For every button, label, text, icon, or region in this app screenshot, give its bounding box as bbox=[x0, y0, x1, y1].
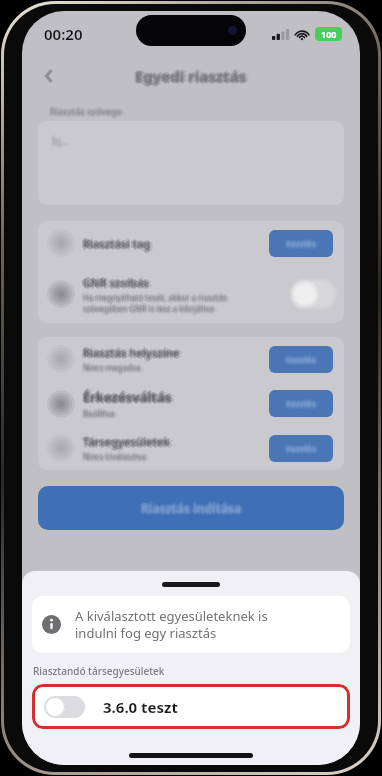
staticText: Érkezésváltás bbox=[84, 389, 173, 407]
button[interactable]: Társegyesületek bbox=[38, 426, 344, 470]
staticText: Riasztási tag bbox=[83, 234, 151, 249]
staticText: Kezelés bbox=[285, 355, 315, 366]
staticText: Kezelés bbox=[286, 236, 316, 247]
staticText: Társegyesületek bbox=[86, 434, 174, 449]
staticText: Kezelés bbox=[287, 397, 317, 408]
staticText: Riasztás helyszíne bbox=[81, 345, 178, 360]
staticText: Nincs kiválasztva bbox=[83, 449, 147, 460]
staticText: Írj… bbox=[55, 135, 72, 147]
staticText: Ha megnyitható tesét, akkor a riasztás s… bbox=[84, 291, 228, 313]
staticText: Társegyesületek bbox=[81, 434, 169, 449]
button[interactable]: Riasztási tag bbox=[38, 221, 344, 265]
staticText: Nincs megadva bbox=[83, 364, 141, 375]
staticText: Riasztási tag bbox=[83, 238, 151, 253]
staticText: Nincs megadva bbox=[83, 362, 141, 373]
staticText: Riasztás indítása bbox=[141, 500, 242, 516]
staticText: Kezelés bbox=[286, 400, 316, 411]
staticText: 00:20 bbox=[44, 24, 83, 44]
button[interactable]: Back bbox=[38, 65, 60, 87]
staticText: Riasztás indítása bbox=[140, 501, 241, 517]
button[interactable]: Kezelés bbox=[269, 230, 333, 257]
staticText: Ha megnyitható tesét, akkor a riasztás s… bbox=[86, 292, 230, 314]
staticText: Kezelés bbox=[286, 441, 316, 452]
staticText: Egyedi riasztás bbox=[135, 64, 247, 84]
staticText: Ha megnyitható tesét, akkor a riasztás s… bbox=[82, 293, 226, 315]
staticText: GNR szolbás bbox=[86, 275, 153, 290]
button[interactable]: Riasztás helyszíne bbox=[38, 337, 344, 381]
staticText: Kezelés bbox=[289, 443, 319, 454]
staticText: Egyedi riasztás bbox=[134, 65, 246, 85]
staticText: Kezelés bbox=[285, 397, 315, 408]
staticText: Kezelés bbox=[287, 399, 317, 410]
staticText: Kezelés bbox=[285, 399, 315, 410]
staticText: Kezelés bbox=[287, 239, 317, 250]
staticText: Riasztás indítása bbox=[142, 499, 243, 515]
staticText: Egyedi riasztás bbox=[136, 65, 248, 85]
staticText: Társegyesületek bbox=[82, 435, 170, 450]
staticText: Nincs kiválasztva bbox=[83, 453, 147, 464]
staticText: Érkezésváltás bbox=[83, 390, 172, 408]
staticText: Nincs kiválasztva bbox=[86, 451, 150, 462]
staticText: Riasztási tag bbox=[83, 236, 151, 251]
staticText: Riasztás szövege bbox=[49, 106, 121, 118]
staticText: Kezelés bbox=[287, 237, 317, 248]
staticText: Egyedi riasztás bbox=[133, 66, 245, 86]
staticText: Riasztás szövege bbox=[48, 105, 120, 117]
staticText: Társegyesületek bbox=[82, 433, 170, 448]
staticText: Riasztás helyszíne bbox=[82, 344, 179, 359]
staticText: GNR szolbás bbox=[83, 275, 150, 290]
button[interactable]: GNR szolbás bbox=[38, 265, 344, 323]
staticText: Társegyesületek bbox=[84, 433, 172, 448]
staticText: Kezelés bbox=[287, 355, 317, 366]
button[interactable]: Toggle 3.6.0 teszt bbox=[44, 696, 85, 718]
staticText: Beállítva bbox=[86, 408, 118, 419]
staticText: Kezelés bbox=[284, 398, 314, 409]
staticText: Riasztás szövege bbox=[51, 104, 123, 116]
staticText: Érkezésváltás bbox=[82, 387, 171, 405]
staticText: Írj… bbox=[53, 136, 70, 148]
staticText: Nincs kiválasztva bbox=[84, 452, 148, 463]
staticText: Kezelés bbox=[286, 240, 316, 251]
button[interactable]: Érkezésváltás bbox=[38, 381, 344, 426]
staticText: Nincs megadva bbox=[84, 361, 142, 372]
staticText: Beállítva bbox=[83, 408, 115, 419]
staticText: Egyedi riasztás bbox=[134, 67, 246, 87]
staticText: Ha megnyitható tesét, akkor a riasztás s… bbox=[83, 290, 227, 312]
staticText: Írj… bbox=[51, 134, 68, 146]
staticText: Nincs megadva bbox=[82, 361, 140, 372]
staticText: Riasztás indítása bbox=[140, 499, 241, 515]
staticText: 100 bbox=[321, 28, 337, 40]
staticText: Riasztási tag bbox=[84, 235, 152, 250]
button[interactable]: Kezelés bbox=[269, 390, 333, 417]
staticText: Ha megnyitható tesét, akkor a riasztás s… bbox=[82, 291, 226, 313]
staticText: Írj… bbox=[50, 135, 67, 147]
staticText: Beállítva bbox=[83, 406, 115, 417]
staticText: Riasztás szövege bbox=[50, 103, 122, 115]
staticText: Riasztás indítása bbox=[142, 501, 243, 517]
staticText: Nincs megadva bbox=[86, 362, 144, 373]
staticText: Kezelés bbox=[286, 398, 316, 409]
staticText: Riasztás szövege bbox=[50, 105, 122, 117]
staticText: Riasztási tag bbox=[84, 237, 152, 252]
button[interactable]: Kezelés bbox=[269, 346, 333, 373]
staticText: Kezelés bbox=[287, 444, 317, 455]
staticText: Beállítva bbox=[84, 409, 116, 420]
staticText: GNR szolbás bbox=[81, 275, 148, 290]
staticText: Nincs kiválasztva bbox=[82, 450, 146, 461]
staticText: Riasztási tag bbox=[82, 237, 150, 252]
staticText: Írj… bbox=[52, 137, 69, 149]
staticText: Kezelés bbox=[284, 238, 314, 249]
button[interactable]: Riasztás indítása bbox=[38, 486, 344, 530]
staticText: Nincs kiválasztva bbox=[82, 452, 146, 463]
staticText: Beállítva bbox=[83, 410, 115, 421]
staticText: Érkezésváltás bbox=[81, 388, 170, 406]
staticText: GNR szolbás bbox=[82, 276, 149, 291]
staticText: Riasztandó társegyesületek bbox=[33, 664, 165, 678]
staticText: Érkezésváltás bbox=[84, 387, 173, 405]
button[interactable]: Toggle 3.6.0 teszt bbox=[32, 684, 350, 729]
staticText: Riasztás szövege bbox=[49, 104, 121, 116]
button[interactable]: Kezelés bbox=[269, 435, 333, 462]
button[interactable]: Toggle bbox=[293, 282, 333, 306]
staticText: Riasztás helyszíne bbox=[86, 345, 183, 360]
staticText: Kezelés bbox=[285, 239, 315, 250]
